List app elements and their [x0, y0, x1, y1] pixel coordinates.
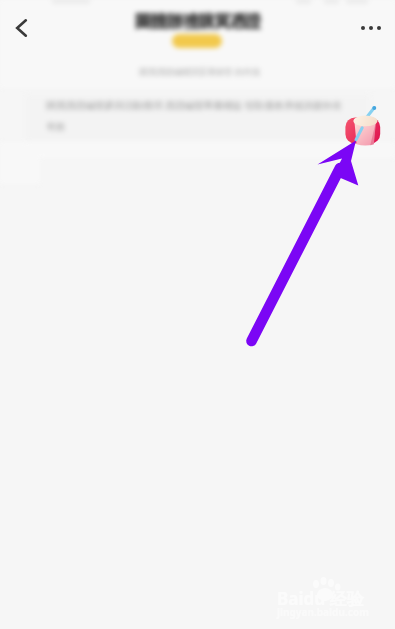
staticText: 團體贈禮購買憑證 — [135, 12, 262, 32]
staticText: 購買憑證編號請妥善保管 勿外洩 — [139, 65, 260, 77]
staticText: 購買憑證編號參與活動獲得 憑證編號專屬權益 領取優惠券後請盡快使 有效 — [46, 98, 348, 133]
button[interactable]: More options — [350, 7, 392, 49]
button[interactable]: Back — [1, 7, 43, 49]
